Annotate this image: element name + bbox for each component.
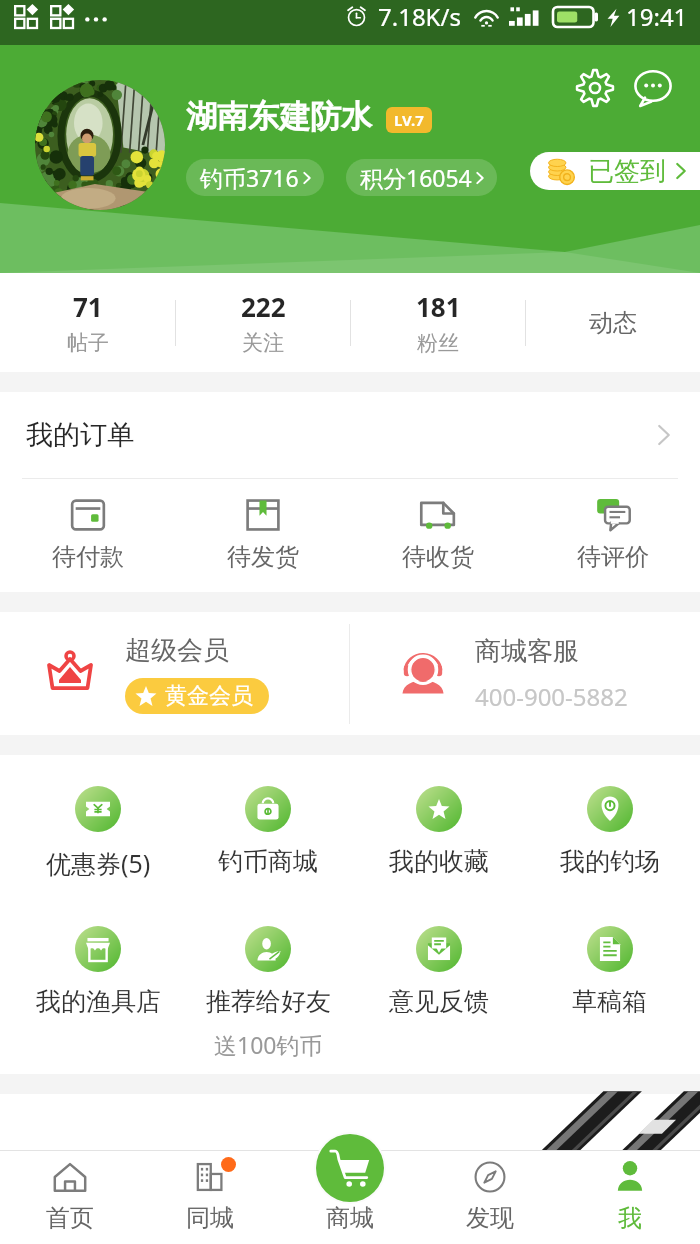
button[interactable]: 71 bbox=[0, 289, 175, 356]
button[interactable]: 我 bbox=[560, 1151, 700, 1244]
staticText: 待评价 bbox=[577, 542, 649, 572]
button[interactable]: 意见反馈 bbox=[353, 926, 524, 1017]
staticText: 商城客服 bbox=[475, 635, 579, 668]
button[interactable]: 222 bbox=[176, 289, 350, 356]
button[interactable]: 首页 bbox=[0, 1151, 140, 1244]
staticText: 积分16054 bbox=[360, 162, 472, 193]
staticText: 同城 bbox=[186, 1203, 234, 1233]
button[interactable]: 待付款 bbox=[0, 496, 175, 572]
staticText: 送100钓币 bbox=[214, 1029, 323, 1060]
staticText: 动态 bbox=[589, 308, 637, 338]
button[interactable]: 积分16054 bbox=[346, 159, 497, 196]
staticText: 草稿箱 bbox=[572, 986, 647, 1017]
button[interactable]: 推荐给好友 bbox=[183, 926, 353, 1060]
button[interactable]: 181 bbox=[351, 289, 525, 356]
staticText: 意见反馈 bbox=[389, 986, 489, 1017]
staticText: 推荐给好友 bbox=[206, 986, 331, 1017]
button[interactable]: 待评价 bbox=[525, 496, 700, 572]
button[interactable]: 待收货 bbox=[350, 496, 525, 572]
staticText: 发现 bbox=[466, 1203, 514, 1233]
button[interactable]: 商城客服 bbox=[350, 612, 700, 735]
button[interactable]: 待发货 bbox=[175, 496, 350, 572]
staticText: 181 bbox=[416, 289, 461, 324]
button[interactable]: 发现 bbox=[420, 1151, 560, 1244]
staticText: 19:41 bbox=[626, 0, 688, 33]
staticText: 首页 bbox=[46, 1203, 94, 1233]
button[interactable]: 钓币商城 bbox=[183, 786, 353, 877]
button[interactable]: 动态 bbox=[526, 308, 700, 338]
staticText: 已签到 bbox=[588, 155, 666, 188]
staticText: 我的渔具店 bbox=[36, 986, 161, 1017]
staticText: 超级会员 bbox=[125, 634, 229, 667]
button[interactable]: 同城 bbox=[140, 1151, 280, 1244]
button[interactable]: 我的订单 bbox=[0, 392, 700, 478]
staticText: 7.18K/s bbox=[378, 0, 461, 33]
button[interactable]: 我的收藏 bbox=[353, 786, 524, 877]
button[interactable]: 我的钓场 bbox=[524, 786, 695, 877]
staticText: LV.7 bbox=[394, 110, 424, 130]
staticText: 待收货 bbox=[402, 542, 474, 572]
button[interactable] bbox=[35, 80, 165, 210]
button[interactable]: 已签到 bbox=[530, 152, 700, 190]
button[interactable]: Settings bbox=[568, 61, 622, 115]
button[interactable]: 商城 bbox=[316, 1134, 384, 1202]
staticText: 400-900-5882 bbox=[475, 680, 628, 713]
button[interactable]: Messages bbox=[626, 61, 680, 115]
button[interactable]: 我的渔具店 bbox=[13, 926, 183, 1017]
staticText: 待发货 bbox=[227, 542, 299, 572]
button[interactable]: 草稿箱 bbox=[524, 926, 695, 1017]
staticText: 我的订单 bbox=[26, 418, 134, 452]
staticText: 我的钓场 bbox=[560, 846, 660, 877]
button[interactable]: 优惠券(5) bbox=[13, 786, 183, 880]
staticText: 71 bbox=[73, 289, 103, 324]
staticText: 222 bbox=[241, 289, 286, 324]
staticText: 粉丝 bbox=[417, 330, 459, 356]
staticText: 我 bbox=[618, 1203, 642, 1233]
staticText: 黄金会员 bbox=[165, 682, 253, 710]
staticText: 我的收藏 bbox=[389, 846, 489, 877]
staticText: 钓币3716 bbox=[200, 162, 299, 193]
staticText: 优惠券(5) bbox=[46, 846, 151, 880]
staticText: 关注 bbox=[242, 330, 284, 356]
staticText: 湖南东建防水 bbox=[186, 97, 372, 136]
staticText: 帖子 bbox=[67, 330, 109, 356]
button[interactable]: 超级会员 bbox=[0, 612, 349, 735]
staticText: 待付款 bbox=[52, 542, 124, 572]
staticText: 钓币商城 bbox=[218, 846, 318, 877]
staticText: 商城 bbox=[326, 1203, 374, 1233]
button[interactable]: 钓币3716 bbox=[186, 159, 324, 196]
